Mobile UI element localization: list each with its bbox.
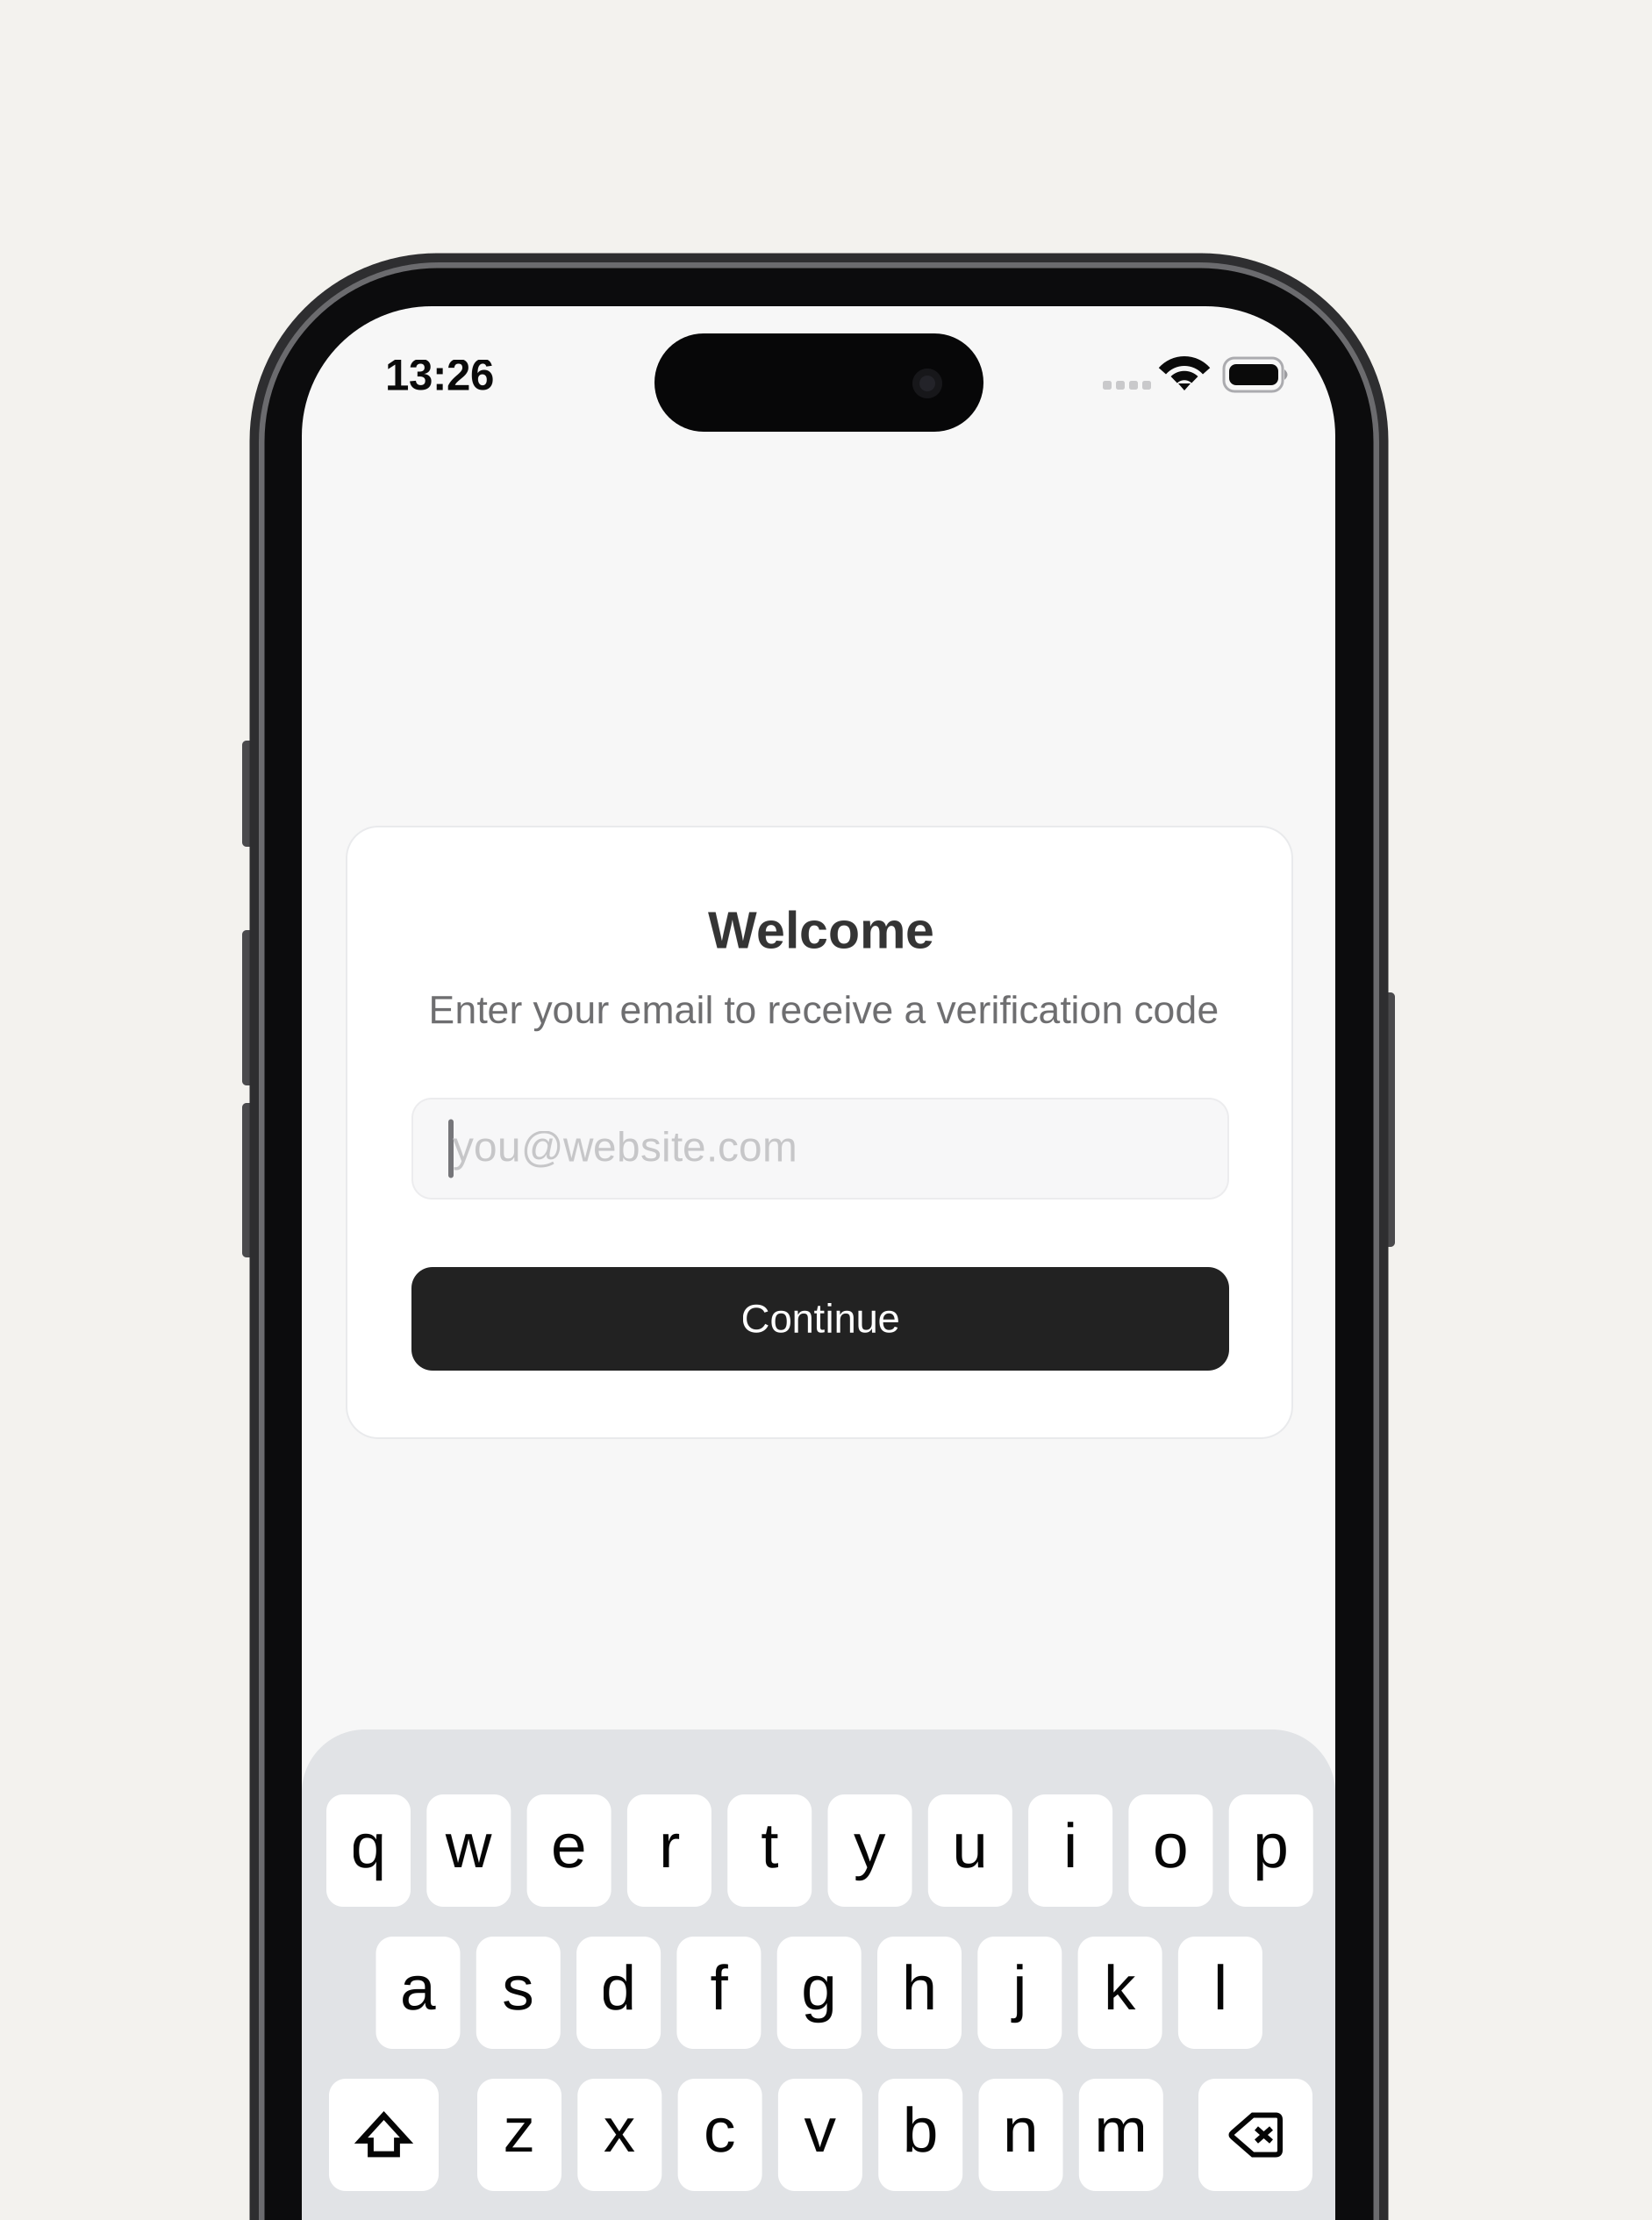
button[interactable]: you@website.com	[412, 1099, 1228, 1199]
staticText: r	[659, 1810, 680, 1881]
staticText: n	[1003, 2094, 1039, 2165]
staticText: m	[1094, 2094, 1148, 2165]
button[interactable]: k	[1078, 1937, 1162, 2049]
staticText: you@website.com	[453, 1124, 797, 1170]
button[interactable]: r	[627, 1794, 711, 1907]
button[interactable]: v	[778, 2079, 862, 2191]
staticText: k	[1104, 1952, 1136, 2023]
staticText: l	[1213, 1952, 1227, 2023]
staticText: h	[901, 1952, 937, 2023]
staticText: q	[350, 1810, 386, 1881]
button[interactable]: y	[828, 1794, 912, 1907]
staticText: v	[804, 2094, 836, 2165]
staticText: g	[801, 1952, 837, 2023]
button[interactable]: i	[1028, 1794, 1113, 1907]
staticText: Enter your email to receive a verificati…	[429, 988, 1219, 1032]
button[interactable]: s	[476, 1937, 560, 2049]
button[interactable]: p	[1229, 1794, 1313, 1907]
staticText: a	[400, 1952, 436, 2023]
button[interactable]: n	[979, 2079, 1063, 2191]
button[interactable]: g	[777, 1937, 861, 2049]
staticText: c	[704, 2094, 736, 2165]
staticText: Welcome	[708, 901, 934, 959]
staticText: j	[1013, 1952, 1027, 2023]
button[interactable]: c	[678, 2079, 762, 2191]
button[interactable]: f	[677, 1937, 761, 2049]
staticText: f	[710, 1952, 728, 2023]
button[interactable]: Delete	[1198, 2079, 1312, 2191]
button[interactable]: t	[727, 1794, 812, 1907]
staticText: u	[952, 1810, 988, 1881]
button[interactable]: a	[376, 1937, 460, 2049]
button[interactable]: l	[1178, 1937, 1262, 2049]
button[interactable]: w	[427, 1794, 511, 1907]
staticText: z	[503, 2094, 536, 2165]
staticText: o	[1153, 1810, 1189, 1881]
staticText: d	[601, 1952, 637, 2023]
staticText: p	[1253, 1810, 1289, 1881]
staticText: x	[603, 2094, 636, 2165]
button[interactable]: z	[477, 2079, 561, 2191]
staticText: s	[502, 1952, 535, 2023]
staticText: i	[1063, 1810, 1077, 1881]
button[interactable]: Continue	[411, 1267, 1229, 1371]
button[interactable]: q	[326, 1794, 411, 1907]
button[interactable]: b	[878, 2079, 963, 2191]
staticText: b	[903, 2094, 938, 2165]
button[interactable]: u	[928, 1794, 1012, 1907]
button[interactable]: o	[1129, 1794, 1213, 1907]
staticText: e	[551, 1810, 587, 1881]
button[interactable]: e	[527, 1794, 611, 1907]
staticText: 13:26	[385, 351, 494, 399]
button[interactable]: m	[1079, 2079, 1163, 2191]
staticText: t	[761, 1810, 778, 1881]
staticText: y	[854, 1810, 886, 1881]
staticText: w	[446, 1810, 492, 1881]
button[interactable]: j	[978, 1937, 1062, 2049]
button[interactable]: d	[576, 1937, 661, 2049]
button[interactable]: Shift	[329, 2079, 439, 2191]
staticText: Continue	[741, 1296, 900, 1341]
button[interactable]: x	[578, 2079, 662, 2191]
button[interactable]: h	[877, 1937, 962, 2049]
